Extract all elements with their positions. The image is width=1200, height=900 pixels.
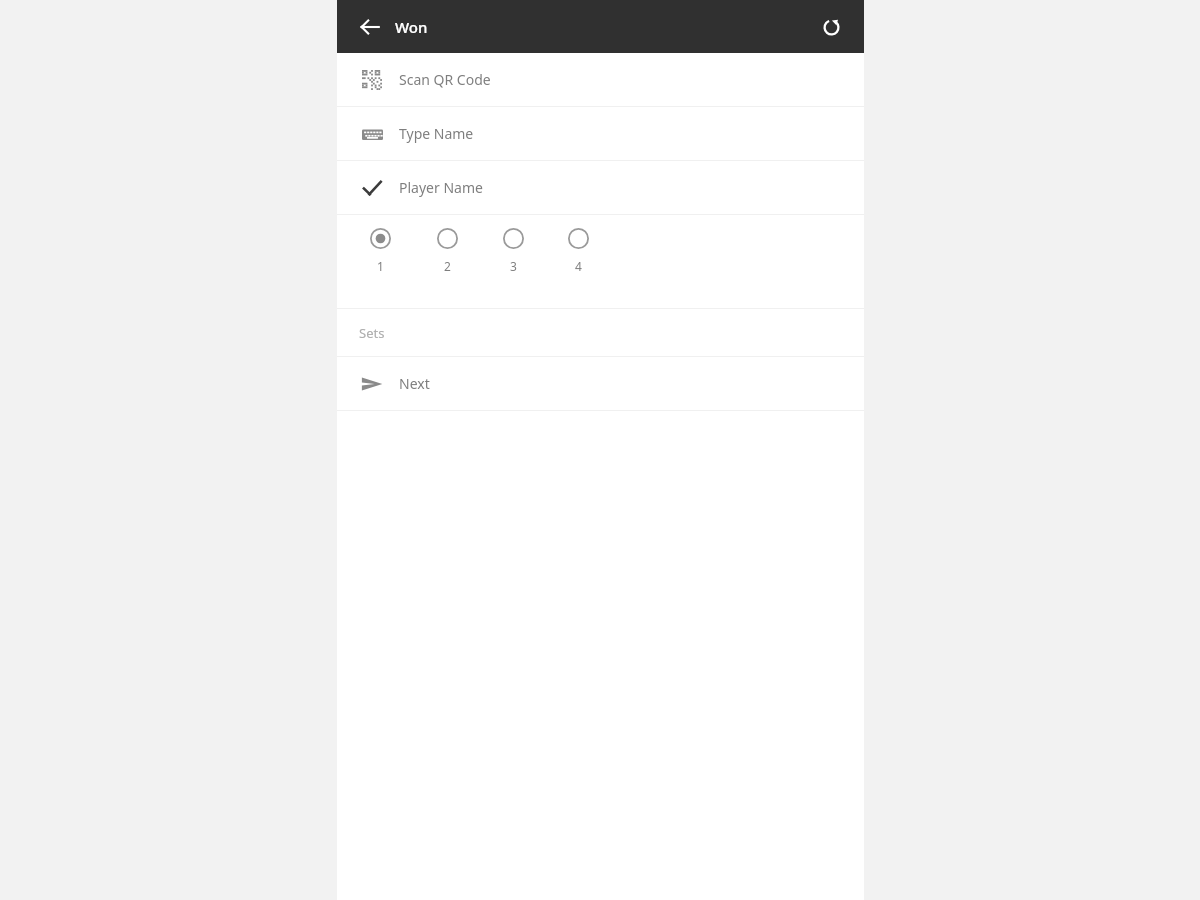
button[interactable]: Sets: [337, 309, 864, 356]
button[interactable]: 4: [556, 228, 600, 274]
button[interactable]: Next: [337, 357, 864, 410]
button[interactable]: 1: [358, 228, 402, 274]
staticText: Next: [399, 374, 430, 393]
staticText: 2: [444, 258, 451, 274]
button[interactable]: Player Name: [337, 161, 864, 214]
staticText: Type Name: [399, 124, 474, 143]
button[interactable]: 2: [425, 228, 469, 274]
staticText: 4: [575, 258, 582, 274]
button[interactable]: Type Name: [337, 107, 864, 160]
staticText: Sets: [359, 324, 385, 342]
button[interactable]: Scan QR Code: [337, 53, 864, 106]
staticText: Scan QR Code: [399, 70, 491, 89]
button[interactable]: Back: [351, 8, 389, 46]
button[interactable]: Refresh: [812, 8, 850, 46]
staticText: 1: [377, 258, 384, 274]
staticText: Won: [395, 17, 428, 37]
button[interactable]: 3: [491, 228, 535, 274]
staticText: 3: [510, 258, 517, 274]
staticText: Player Name: [399, 178, 483, 197]
